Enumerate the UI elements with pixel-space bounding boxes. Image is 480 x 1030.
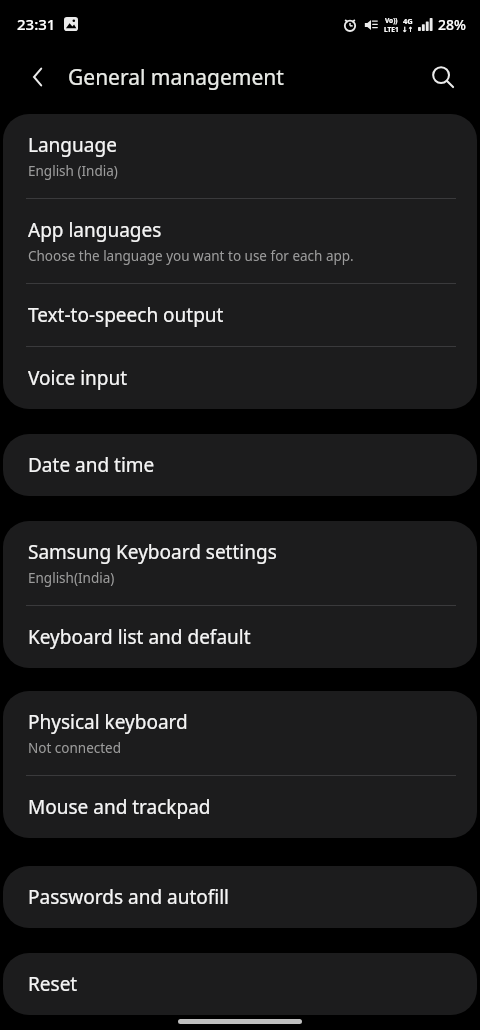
button[interactable]: Physical keyboard [3,691,477,775]
staticText: Vo)) [385,16,398,25]
staticText: General management [68,63,284,92]
staticText: LTE1 [384,25,399,34]
button[interactable]: Date and time [3,434,477,496]
staticText: 28% [438,15,466,34]
button[interactable]: Language [3,114,477,198]
button[interactable]: Back [14,53,62,101]
button[interactable]: Keyboard list and default [3,606,477,668]
staticText: Text-to-speech output [28,302,224,328]
staticText: Language [28,132,117,158]
staticText: Mouse and trackpad [28,794,211,820]
button[interactable]: Reset [3,953,477,1015]
staticText: Choose the language you want to use for … [28,247,354,265]
staticText: Reset [28,971,78,997]
button[interactable]: App languages [3,199,477,283]
staticText: 23:31 [17,14,56,34]
staticText: Not connected [28,739,122,757]
staticText: ↓↑ [402,26,414,34]
button[interactable]: Voice input [3,347,477,409]
staticText: App languages [28,217,162,243]
staticText: Keyboard list and default [28,624,251,650]
staticText: Physical keyboard [28,709,188,735]
button[interactable]: Text-to-speech output [3,284,477,346]
staticText: Date and time [28,452,155,478]
staticText: Samsung Keyboard settings [28,539,277,565]
button[interactable]: Samsung Keyboard settings [3,521,477,605]
staticText: English(India) [28,569,115,587]
staticText: Passwords and autofill [28,884,230,910]
staticText: 4G [403,16,413,26]
staticText: Voice input [28,365,128,391]
button[interactable]: Mouse and trackpad [3,776,477,838]
button[interactable]: Search [419,53,467,101]
button[interactable]: Passwords and autofill [3,866,477,928]
staticText: English (India) [28,162,118,180]
